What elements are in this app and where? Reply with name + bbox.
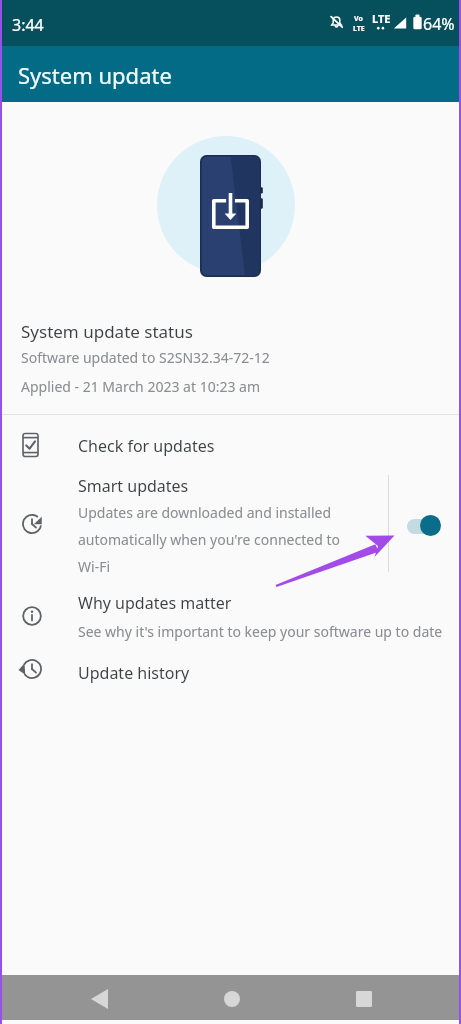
staticText: Check for updates [78,435,215,457]
staticText: 3:44 [12,14,44,36]
button[interactable]: Why updates matter [2,584,459,640]
staticText: System update [18,60,172,90]
staticText: Software updated to S2SN32.34-72-12 [21,348,270,367]
button[interactable]: Smart updates toggle, on [402,506,448,546]
button[interactable]: Update history [2,644,459,700]
button[interactable]: Recent apps [341,976,387,1021]
staticText: See why it's important to keep your soft… [78,622,443,641]
button[interactable]: Home [209,976,255,1021]
button[interactable]: Smart updates [2,474,459,584]
button[interactable]: Back [76,976,122,1021]
button[interactable]: Check for updates [2,418,459,474]
staticText: Update history [78,662,190,684]
staticText: Smart updates [78,475,189,497]
staticText: System update status [21,320,193,343]
staticText: LTE [372,11,391,26]
staticText: Why updates matter [78,592,232,614]
staticText: Vo [354,14,363,24]
staticText: Updates are downloaded and installed aut… [78,503,340,576]
staticText: LTE [353,24,365,34]
staticText: 64% [423,13,455,35]
staticText: Applied - 21 March 2023 at 10:23 am [21,377,260,396]
